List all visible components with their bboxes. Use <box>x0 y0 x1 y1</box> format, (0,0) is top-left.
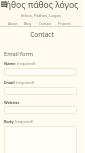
button[interactable] <box>4 106 77 114</box>
staticText: Contact <box>39 21 52 26</box>
staticText: About <box>8 21 18 26</box>
staticText: ήθος πάθος λόγος <box>1 0 83 11</box>
staticText: Blog <box>24 21 32 26</box>
staticText: Name <box>4 61 16 66</box>
staticText: Contact <box>1 30 83 39</box>
staticText: Ethos, Pathos, Logos <box>0 13 82 19</box>
staticText: Body <box>4 119 14 124</box>
button[interactable]: Blog <box>24 21 32 26</box>
staticText: Projects <box>58 21 71 26</box>
button[interactable] <box>4 87 77 95</box>
staticText: Email <box>4 80 15 85</box>
button[interactable] <box>4 68 77 76</box>
button[interactable]: Menu <box>0 0 9 9</box>
button[interactable] <box>4 126 77 153</box>
staticText: Website <box>4 100 20 105</box>
button[interactable]: Contact <box>39 21 52 26</box>
button[interactable]: Projects <box>58 21 71 26</box>
staticText: (required) <box>15 80 34 85</box>
button[interactable]: About <box>8 21 18 26</box>
staticText: Email form <box>4 50 34 58</box>
staticText: (required) <box>16 61 35 66</box>
staticText: (required) <box>14 119 33 124</box>
